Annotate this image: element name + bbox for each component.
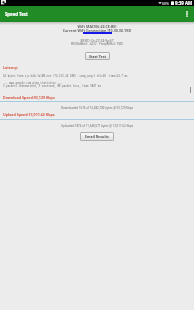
- staticText: Speed Test: [5, 11, 28, 17]
- button[interactable]: More options: [182, 9, 192, 19]
- staticText: Email Results: [85, 134, 109, 139]
- staticText: BSSID: 0c:27:24:9a:67: [0, 38, 194, 42]
- staticText: Download Speed:93,129 Kbps: [3, 95, 194, 100]
- staticText: WiFi MAC[06:22:CE:B5]: [0, 24, 194, 29]
- button[interactable]: Start Test: [85, 52, 110, 60]
- staticText: Start Test: [89, 54, 107, 59]
- staticText: 9:39 AM: [175, 0, 193, 6]
- button[interactable]: Email Results: [80, 132, 114, 141]
- staticText: 3 packets transmitted, 3 received, 0% pa…: [3, 84, 194, 88]
- staticText: --- www.google.com ping statistics ---: [3, 81, 194, 85]
- staticText: Downloaded 1674 of 13,482,782 bytes @ 93…: [0, 106, 194, 110]
- staticText: 64 bytes from sjc-b1b.1e100.net (74.125.…: [3, 74, 194, 78]
- staticText: Current WiFi Connection [10.30.30.193]: [0, 28, 194, 33]
- staticText: Latency:: [3, 65, 194, 70]
- staticText: RSSI(dBm): -42.0 Freq(MHz): TBD: [0, 41, 194, 45]
- staticText: Upload Speed:13,011.62 Kbps: [3, 112, 194, 117]
- staticText: 60%: [162, 1, 170, 6]
- staticText: Uploaded 1874 of 11,648,671 bytes @ 13,0…: [0, 124, 194, 128]
